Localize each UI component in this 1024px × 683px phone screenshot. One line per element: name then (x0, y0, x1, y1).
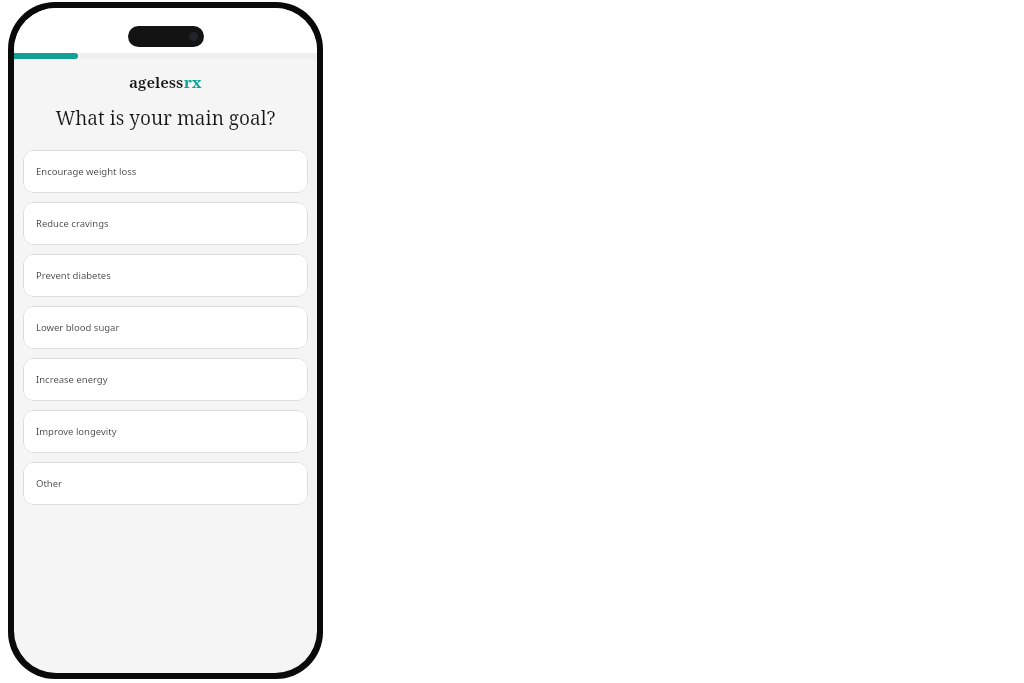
staticText: rx (184, 72, 202, 92)
other: Dynamic Island (128, 26, 204, 47)
button[interactable]: Increase energy (23, 358, 308, 401)
staticText: Reduce cravings (36, 217, 109, 230)
button[interactable]: Reduce cravings (23, 202, 308, 245)
staticText: Lower blood sugar (36, 321, 120, 334)
button[interactable]: Improve longevity (23, 410, 308, 453)
button[interactable]: Lower blood sugar (23, 306, 308, 349)
button[interactable]: Encourage weight loss (23, 150, 308, 193)
staticText: Increase energy (36, 373, 108, 386)
staticText: Encourage weight loss (36, 165, 137, 178)
staticText: Prevent diabetes (36, 269, 111, 282)
button[interactable]: Other (23, 462, 308, 505)
staticText: What is your main goal? (14, 105, 317, 131)
staticText: Other (36, 477, 63, 490)
button[interactable]: Prevent diabetes (23, 254, 308, 297)
staticText: Improve longevity (36, 425, 117, 438)
staticText: ageless (129, 72, 184, 92)
